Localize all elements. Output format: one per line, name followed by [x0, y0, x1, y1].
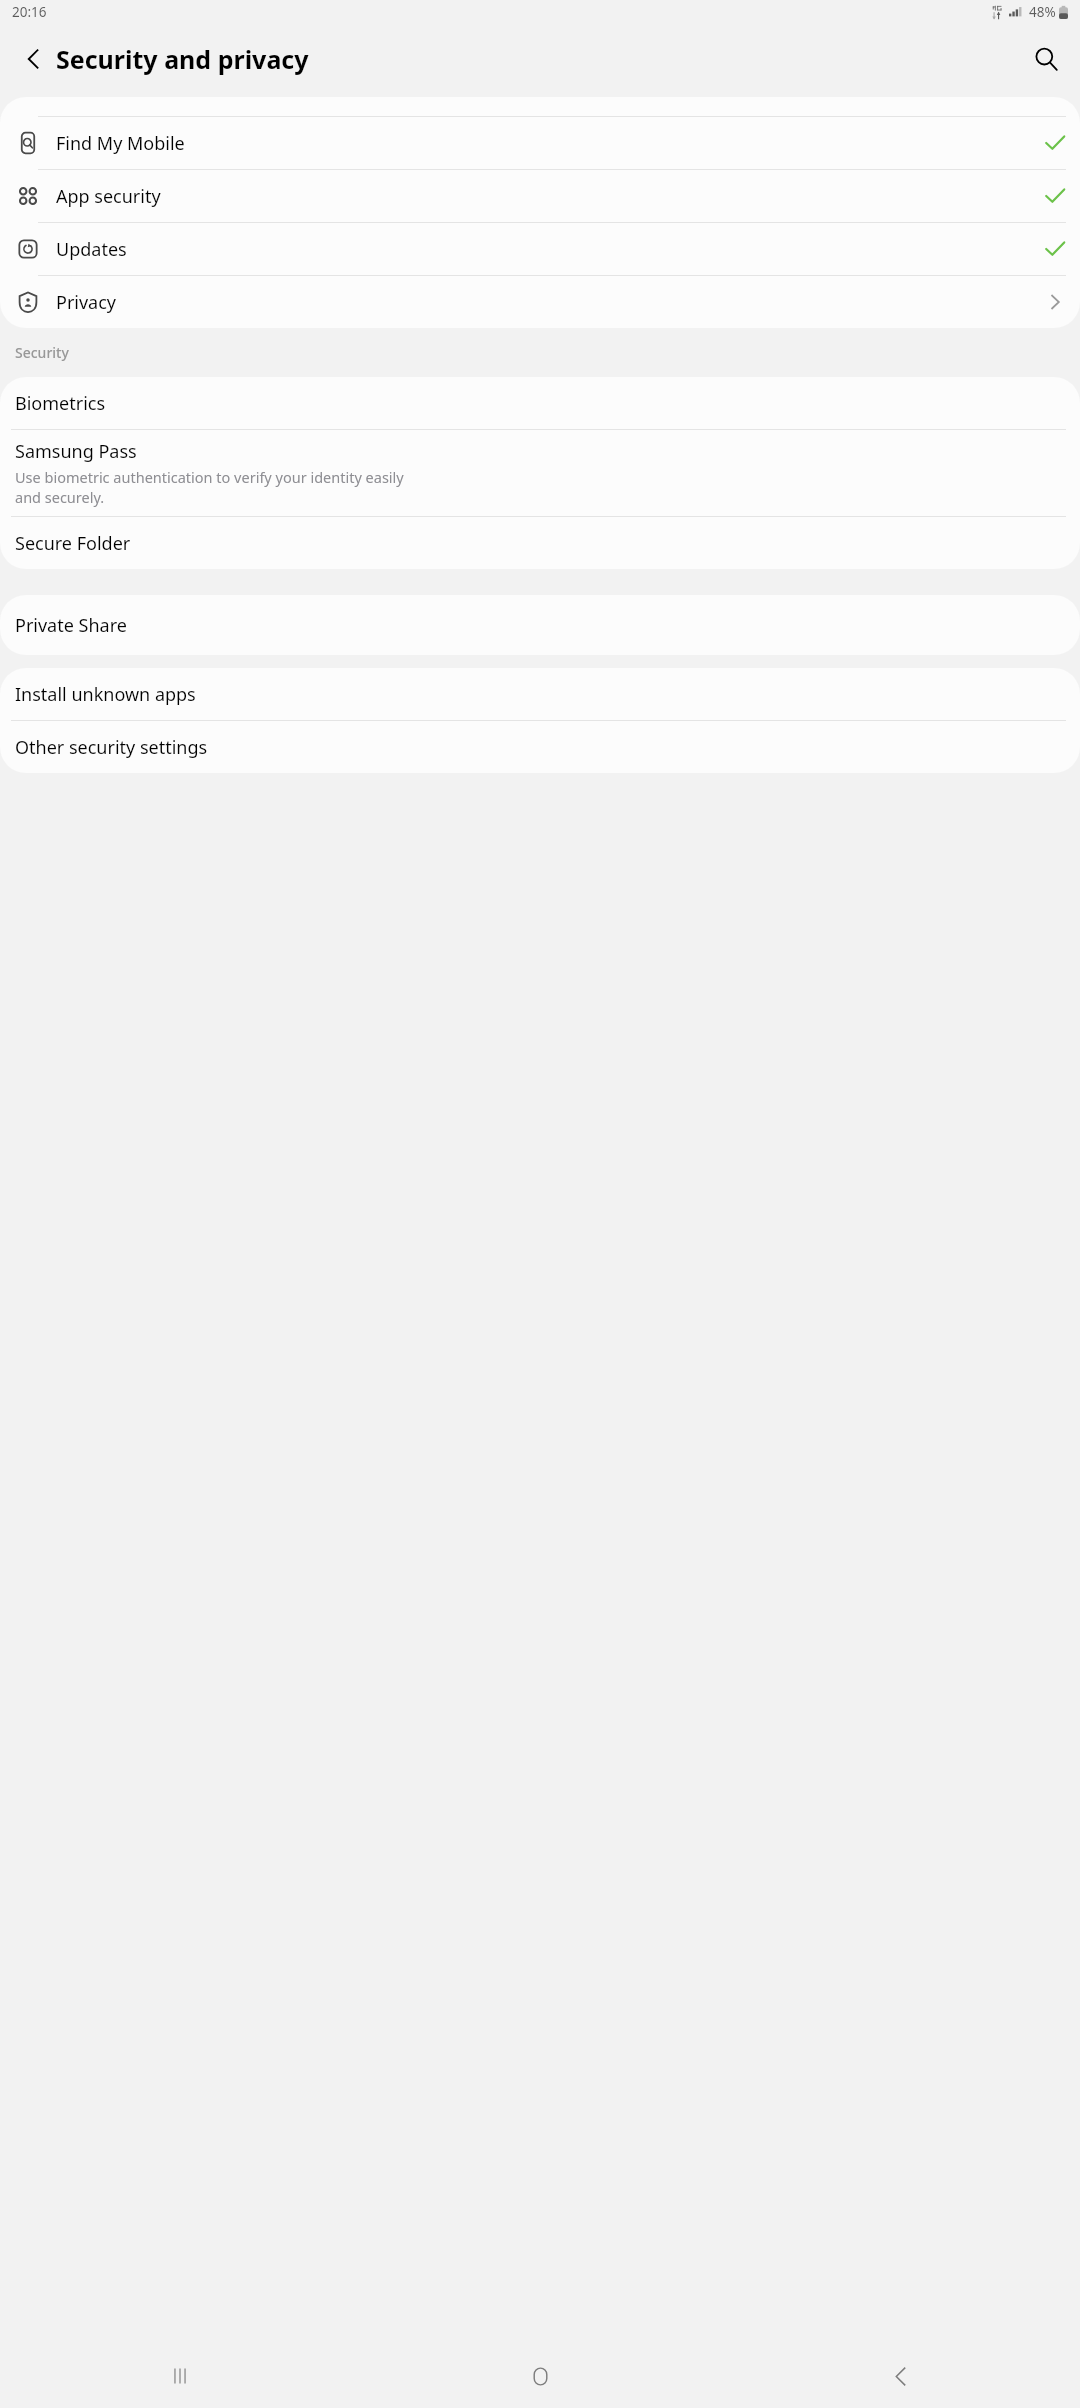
staticText: Install unknown apps [15, 682, 196, 707]
button[interactable]: Privacy [0, 276, 1080, 328]
staticText: 48% [1029, 3, 1056, 21]
button[interactable]: Search [1018, 31, 1074, 87]
staticText: 20:16 [12, 3, 47, 21]
staticText: Other security settings [15, 735, 208, 760]
button[interactable]: App security [0, 170, 1080, 222]
staticText: Security [15, 343, 69, 362]
button[interactable]: Recents [0, 2344, 360, 2408]
staticText: Samsung Pass [15, 439, 137, 464]
button[interactable]: Other security settings [0, 721, 1080, 773]
button[interactable]: Install unknown apps [0, 668, 1080, 720]
button[interactable]: Secure Folder [0, 517, 1080, 569]
button[interactable]: Updates [0, 223, 1080, 275]
button[interactable]: Private Share [0, 595, 1080, 655]
staticText: Use biometric authentication to verify y… [15, 467, 404, 507]
staticText: Secure Folder [15, 531, 131, 556]
button[interactable]: Samsung Pass [0, 430, 1080, 516]
staticText: Privacy [56, 290, 1030, 315]
staticText: Updates [56, 237, 1030, 262]
staticText: Find My Mobile [56, 131, 1030, 156]
button[interactable]: Biometrics [0, 377, 1080, 429]
staticText: Private Share [15, 613, 127, 638]
staticText: Biometrics [15, 391, 106, 416]
button[interactable]: Find My Mobile [0, 117, 1080, 169]
staticText: App security [56, 184, 1030, 209]
button[interactable]: Back [6, 31, 62, 87]
staticText: Security and privacy [56, 42, 309, 76]
button[interactable]: Home [360, 2344, 720, 2408]
button[interactable]: Back [720, 2344, 1080, 2408]
